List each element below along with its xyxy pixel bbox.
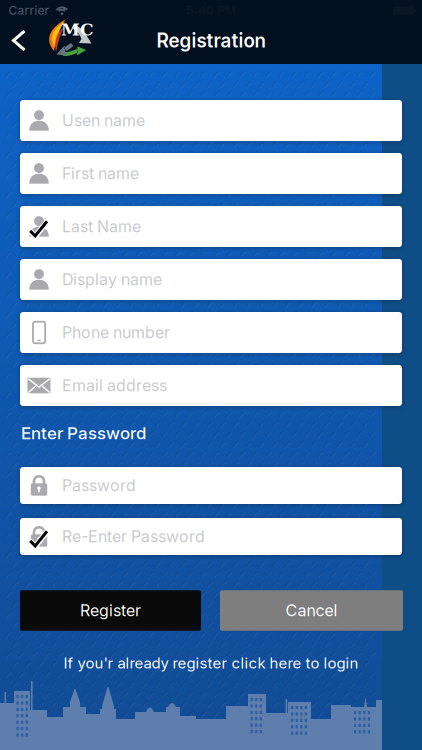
button[interactable]: First name — [20, 153, 402, 194]
button[interactable]: Email address — [20, 365, 402, 406]
button[interactable]: Display name — [20, 259, 402, 300]
staticText: Registration — [156, 29, 265, 52]
staticText: Password — [62, 476, 136, 495]
staticText: Phone number — [62, 323, 170, 342]
staticText: Register — [80, 601, 141, 620]
button[interactable]: Re-Enter Password — [20, 518, 402, 555]
staticText: Cancel — [285, 601, 337, 620]
button[interactable]: Register — [20, 590, 201, 631]
button[interactable] — [12, 28, 27, 52]
staticText: Email address — [62, 376, 167, 395]
staticText: First name — [62, 164, 139, 183]
button[interactable]: If you'r already register click here to … — [63, 654, 358, 672]
button[interactable]: Usen name — [20, 100, 402, 141]
staticText: Re-Enter Password — [62, 527, 205, 546]
staticText: Carrier — [8, 3, 49, 18]
staticText: Usen name — [62, 111, 145, 130]
staticText: If you'r already register click here to … — [63, 654, 358, 672]
staticText: Last Name — [62, 217, 141, 236]
button[interactable]: Last Name — [20, 206, 402, 247]
button[interactable]: Phone number — [20, 312, 402, 353]
staticText: Display name — [62, 270, 162, 289]
staticText: MC — [61, 19, 94, 39]
button[interactable]: Password — [20, 467, 402, 504]
staticText: Enter Password — [21, 423, 146, 443]
button[interactable]: Cancel — [220, 590, 403, 631]
